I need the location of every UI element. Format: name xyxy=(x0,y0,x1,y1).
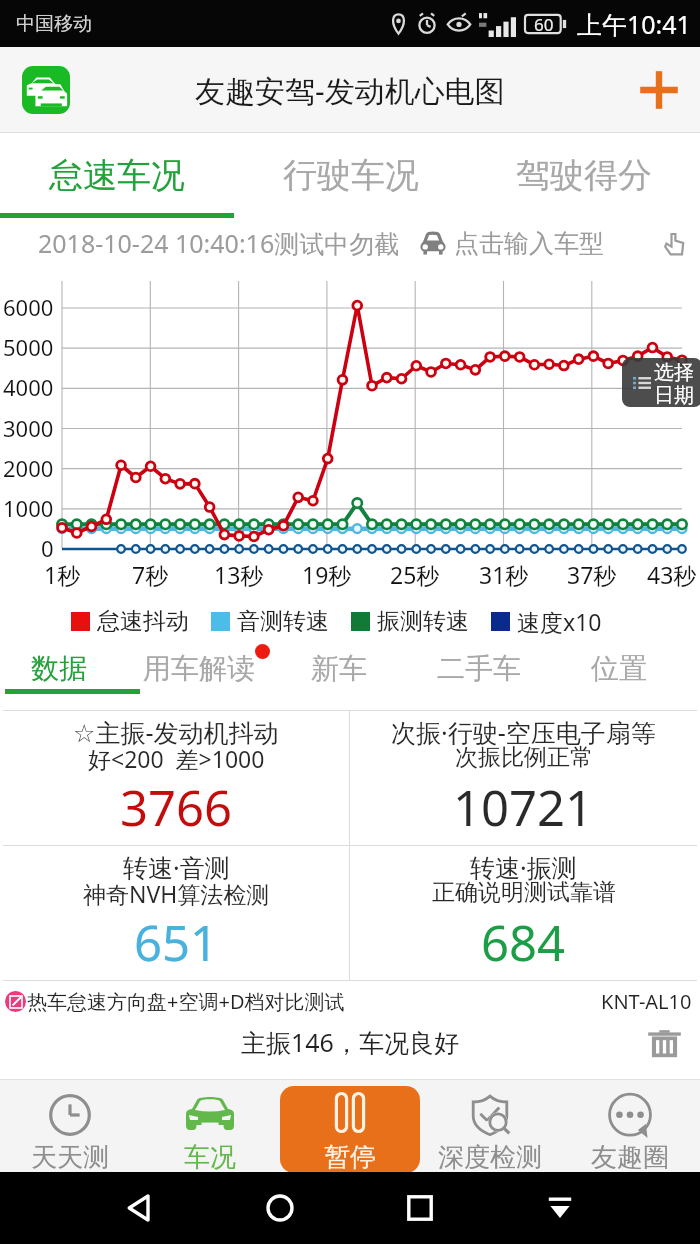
button[interactable]: ☆主振-发动机抖动 xyxy=(3,711,349,845)
staticText: 651 xyxy=(134,909,219,976)
staticText: 中国移动 xyxy=(16,12,92,36)
staticText: 深度检测 xyxy=(438,1141,542,1174)
staticText: 热车怠速方向盘+空调+D档对比测试 xyxy=(27,988,345,1015)
staticText: 2000 xyxy=(3,453,54,483)
button[interactable]: Hide navigation bar xyxy=(540,1188,580,1228)
button[interactable]: 次振·行驶-空压电子扇等 xyxy=(350,711,697,845)
button[interactable]: 深度检测 xyxy=(420,1079,560,1172)
button[interactable]: 转速·振测 xyxy=(350,846,697,980)
button[interactable]: Add xyxy=(639,70,679,110)
staticText: 驾驶得分 xyxy=(516,154,652,197)
button[interactable]: 新车 xyxy=(280,643,420,694)
staticText: 7秒 xyxy=(132,559,169,590)
button[interactable]: 天天测 xyxy=(0,1079,140,1172)
button[interactable]: 友趣圈 xyxy=(560,1079,700,1172)
staticText: 日期 xyxy=(654,383,694,407)
staticText: 新车 xyxy=(311,651,367,686)
staticText: 友趣安驾-发动机心电图 xyxy=(195,70,505,111)
button[interactable]: Tap hint xyxy=(658,228,688,258)
staticText: 转速·振测 xyxy=(470,850,577,884)
staticText: 684 xyxy=(481,909,566,976)
staticText: ☆主振-发动机抖动 xyxy=(73,715,279,749)
staticText: 天天测 xyxy=(31,1141,109,1174)
staticText: 点击输入车型 xyxy=(454,228,604,259)
staticText: 行驶车况 xyxy=(283,154,419,197)
button[interactable]: 选择 xyxy=(622,358,700,407)
staticText: 31秒 xyxy=(479,559,529,590)
staticText: 13秒 xyxy=(214,559,264,590)
staticText: KNT-AL10 xyxy=(601,988,692,1015)
button[interactable]: Home xyxy=(260,1188,300,1228)
staticText: 3000 xyxy=(3,413,54,443)
staticText: 10721 xyxy=(453,774,594,841)
button[interactable]: 二手车 xyxy=(420,643,560,694)
staticText: 次振·行驶-空压电子扇等 xyxy=(391,715,656,749)
button[interactable]: 位置 xyxy=(560,643,700,694)
staticText: 1000 xyxy=(3,493,54,523)
staticText: 暂停 xyxy=(324,1141,376,1173)
staticText: 43秒 xyxy=(647,559,697,590)
staticText: 车况 xyxy=(184,1141,236,1174)
staticText: 25秒 xyxy=(390,559,440,590)
staticText: 2018-10-24 10:40:16测试中勿截 xyxy=(38,226,400,260)
staticText: 好<200 差>1000 xyxy=(88,743,265,774)
button[interactable]: Delete xyxy=(646,1025,683,1062)
staticText: 0 xyxy=(41,533,54,563)
button[interactable]: 车况 xyxy=(140,1079,280,1172)
staticText: 用车解读 xyxy=(143,651,255,686)
staticText: 音测转速 xyxy=(237,607,329,636)
button[interactable]: 暂停 xyxy=(280,1086,420,1173)
button[interactable]: 驾驶得分 xyxy=(467,133,700,218)
staticText: 6000 xyxy=(3,292,54,322)
staticText: 正确说明测试靠谱 xyxy=(432,878,616,907)
staticText: 数据 xyxy=(31,651,87,686)
staticText: 1秒 xyxy=(44,559,81,590)
staticText: 4000 xyxy=(3,372,54,402)
staticText: 37秒 xyxy=(567,559,617,590)
button[interactable]: Recents xyxy=(400,1188,440,1228)
staticText: 二手车 xyxy=(437,651,521,686)
staticText: 3766 xyxy=(120,774,233,841)
staticText: 转速·音测 xyxy=(123,850,230,884)
button[interactable]: App logo xyxy=(22,66,70,114)
staticText: 怠速车况 xyxy=(49,154,185,197)
staticText: 速度x10 xyxy=(517,606,602,637)
staticText: 60 xyxy=(534,13,554,36)
button[interactable]: 行驶车况 xyxy=(234,133,467,218)
button[interactable]: 数据 xyxy=(0,643,140,694)
staticText: 神奇NVH算法检测 xyxy=(83,878,270,909)
button[interactable]: 转速·音测 xyxy=(3,846,349,980)
button[interactable]: 用车解读 xyxy=(140,643,280,694)
button[interactable]: 怠速车况 xyxy=(0,133,234,218)
staticText: 振测转速 xyxy=(377,607,469,636)
staticText: 怠速抖动 xyxy=(97,607,189,636)
staticText: 5000 xyxy=(3,332,54,362)
staticText: 选择 xyxy=(654,360,694,385)
button[interactable]: 点击输入车型 xyxy=(418,228,604,259)
staticText: 主振146，车况良好 xyxy=(241,1025,459,1059)
staticText: 位置 xyxy=(591,651,647,686)
staticText: 次振比例正常 xyxy=(455,743,593,772)
button[interactable]: Back xyxy=(120,1188,160,1228)
staticText: 友趣圈 xyxy=(591,1141,669,1174)
staticText: 19秒 xyxy=(302,559,352,590)
staticText: 上午10:41 xyxy=(577,7,691,41)
